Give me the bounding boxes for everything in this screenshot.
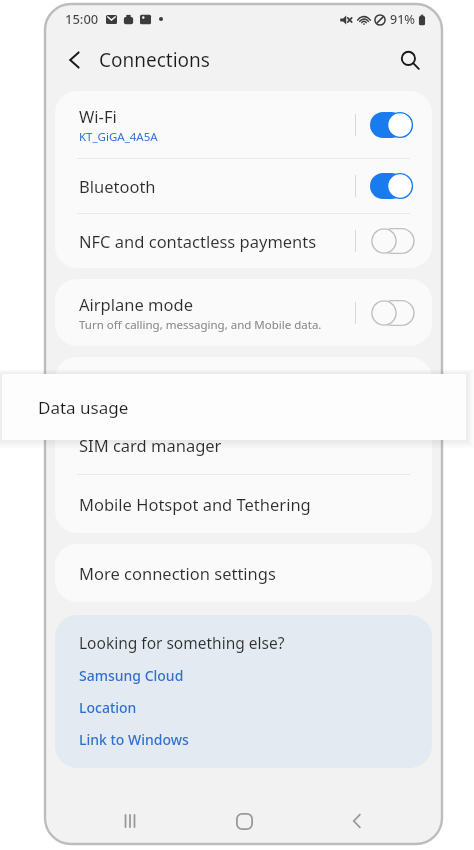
staticText: Looking for something else? [79, 632, 285, 653]
staticText: Wi-Fi [79, 105, 117, 127]
staticText: 91% [390, 11, 415, 28]
staticText: Link to Windows [79, 730, 189, 749]
staticText: 15:00 [65, 10, 99, 28]
staticText: Turn off calling, messaging, and Mobile … [79, 317, 322, 333]
button[interactable]: SIM card manager [55, 416, 432, 474]
button[interactable]: Home [216, 798, 272, 844]
staticText: Bluetooth [79, 175, 156, 197]
staticText: NFC and contactless payments [79, 230, 317, 252]
button[interactable]: More connection settings [55, 544, 432, 602]
staticText: SIM card manager [79, 434, 222, 456]
button[interactable]: Wi-Fi [55, 91, 432, 158]
staticText: Location [79, 698, 137, 717]
staticText: KT_GiGA_4A5A [79, 129, 158, 145]
button[interactable]: Back [55, 40, 95, 80]
button[interactable]: Data usage [55, 357, 432, 415]
button[interactable]: Back [329, 798, 385, 844]
button[interactable]: On [370, 112, 414, 138]
button[interactable]: Link to Windows [79, 730, 189, 749]
staticText: More connection settings [79, 562, 276, 584]
button[interactable]: Off [370, 228, 414, 254]
button[interactable]: Airplane mode [55, 279, 432, 346]
staticText: Mobile Hotspot and Tethering [79, 493, 311, 515]
button[interactable]: Search [390, 40, 430, 80]
button[interactable]: Bluetooth [55, 159, 432, 213]
button[interactable]: Location [79, 698, 137, 717]
staticText: Airplane mode [79, 293, 193, 315]
staticText: Samsung Cloud [79, 666, 184, 685]
button[interactable]: NFC and contactless payments [55, 214, 432, 268]
button[interactable]: On [370, 173, 414, 199]
button[interactable]: Recents [102, 798, 158, 844]
staticText: Connections [99, 47, 210, 73]
button[interactable]: Off [370, 300, 414, 326]
button[interactable]: Mobile Hotspot and Tethering [55, 475, 432, 533]
button[interactable]: Data usage [2, 374, 466, 440]
staticText: Data usage [38, 396, 129, 419]
button[interactable]: Samsung Cloud [79, 666, 184, 685]
